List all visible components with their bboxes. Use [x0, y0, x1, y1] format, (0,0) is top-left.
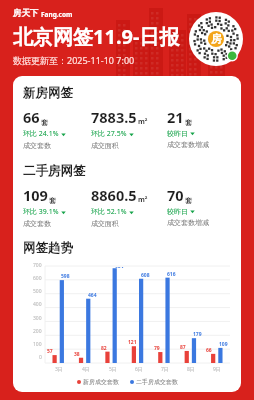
staticText: 成交套数增减 — [167, 140, 209, 149]
staticText: 464 — [88, 292, 97, 299]
button[interactable]: 21 — [167, 107, 232, 149]
staticText: 200 — [33, 328, 42, 335]
staticText: 北京网签11.9-日报 — [13, 23, 180, 50]
staticText: Fang.com — [41, 10, 73, 19]
staticText: 9日 — [213, 366, 221, 373]
button[interactable]: 二手房成交套数 — [130, 378, 178, 386]
staticText: 成交套数增减 — [167, 218, 209, 227]
staticText: 套 — [185, 196, 192, 205]
staticText: 400 — [33, 301, 42, 308]
button[interactable]: 网签趋势 — [23, 240, 73, 256]
staticText: 616 — [167, 271, 176, 278]
staticText: 套 — [49, 196, 56, 205]
staticText: 新房成交套数 — [83, 378, 119, 386]
button[interactable]: 66 — [23, 107, 91, 150]
staticText: 6日 — [135, 366, 143, 373]
button[interactable]: 新房网签 — [23, 85, 73, 101]
staticText: 66 — [23, 107, 40, 127]
staticText: 57 — [47, 348, 53, 355]
staticText: 66 — [206, 347, 212, 354]
staticText: 3日 — [55, 366, 63, 373]
staticText: 79 — [154, 345, 160, 352]
staticText: 网签趋势 — [23, 240, 73, 256]
staticText: 成交套数 — [23, 219, 51, 228]
staticText: 环比 39.1% — [23, 207, 59, 217]
staticText: 4日 — [82, 366, 90, 373]
staticText: 608 — [141, 272, 150, 279]
staticText: 8日 — [187, 366, 195, 373]
staticText: 109 — [23, 185, 48, 205]
staticText: 5日 — [109, 366, 117, 373]
staticText: 500 — [33, 288, 42, 295]
staticText: 数据更新至：2025-11-10 7:00 — [13, 54, 135, 66]
staticText: 成交面积 — [91, 141, 119, 150]
staticText: 成交面积 — [91, 219, 119, 228]
staticText: 0 — [39, 354, 42, 361]
staticText: m² — [138, 195, 148, 205]
staticText: 二手房网签 — [23, 163, 86, 179]
staticText: 684 — [115, 266, 124, 268]
staticText: 套 — [185, 118, 192, 127]
staticText: 121 — [128, 339, 137, 346]
staticText: 109 — [219, 341, 228, 348]
staticText: 100 — [33, 341, 42, 348]
staticText: m² — [138, 117, 148, 127]
staticText: 房天下 — [13, 8, 39, 19]
staticText: 598 — [61, 273, 70, 280]
button[interactable]: 新房成交套数 — [77, 378, 119, 386]
button[interactable]: 8860.5 — [91, 185, 167, 228]
button[interactable]: 房天下 — [13, 8, 73, 19]
button[interactable]: 109 — [23, 185, 91, 228]
button[interactable]: 7883.5 — [91, 107, 167, 150]
button[interactable]: 70 — [167, 185, 232, 227]
staticText: 8860.5 — [91, 185, 137, 205]
staticText: 房 — [211, 32, 222, 46]
staticText: 87 — [180, 344, 186, 351]
staticText: 300 — [33, 315, 42, 322]
staticText: 较昨日 — [167, 207, 188, 216]
staticText: 600 — [33, 275, 42, 282]
staticText: 环比 27.5% — [91, 129, 127, 139]
staticText: 套 — [41, 118, 48, 127]
button[interactable]: 公众号二维码 — [189, 12, 243, 66]
staticText: 82 — [101, 345, 107, 352]
staticText: 二手房成交套数 — [136, 378, 178, 386]
staticText: 新房网签 — [23, 85, 73, 101]
staticText: 7883.5 — [91, 107, 137, 127]
button[interactable]: 二手房网签 — [23, 163, 86, 179]
staticText: 成交套数 — [23, 141, 51, 150]
staticText: 38 — [74, 351, 80, 358]
staticText: 较昨日 — [167, 129, 188, 138]
staticText: 环比 52.1% — [91, 207, 127, 217]
staticText: 21 — [167, 107, 184, 127]
staticText: 7日 — [161, 366, 169, 373]
staticText: 179 — [193, 331, 202, 338]
staticText: 700 — [33, 262, 42, 269]
staticText: 70 — [167, 185, 184, 205]
staticText: 环比 24.1% — [23, 129, 59, 139]
